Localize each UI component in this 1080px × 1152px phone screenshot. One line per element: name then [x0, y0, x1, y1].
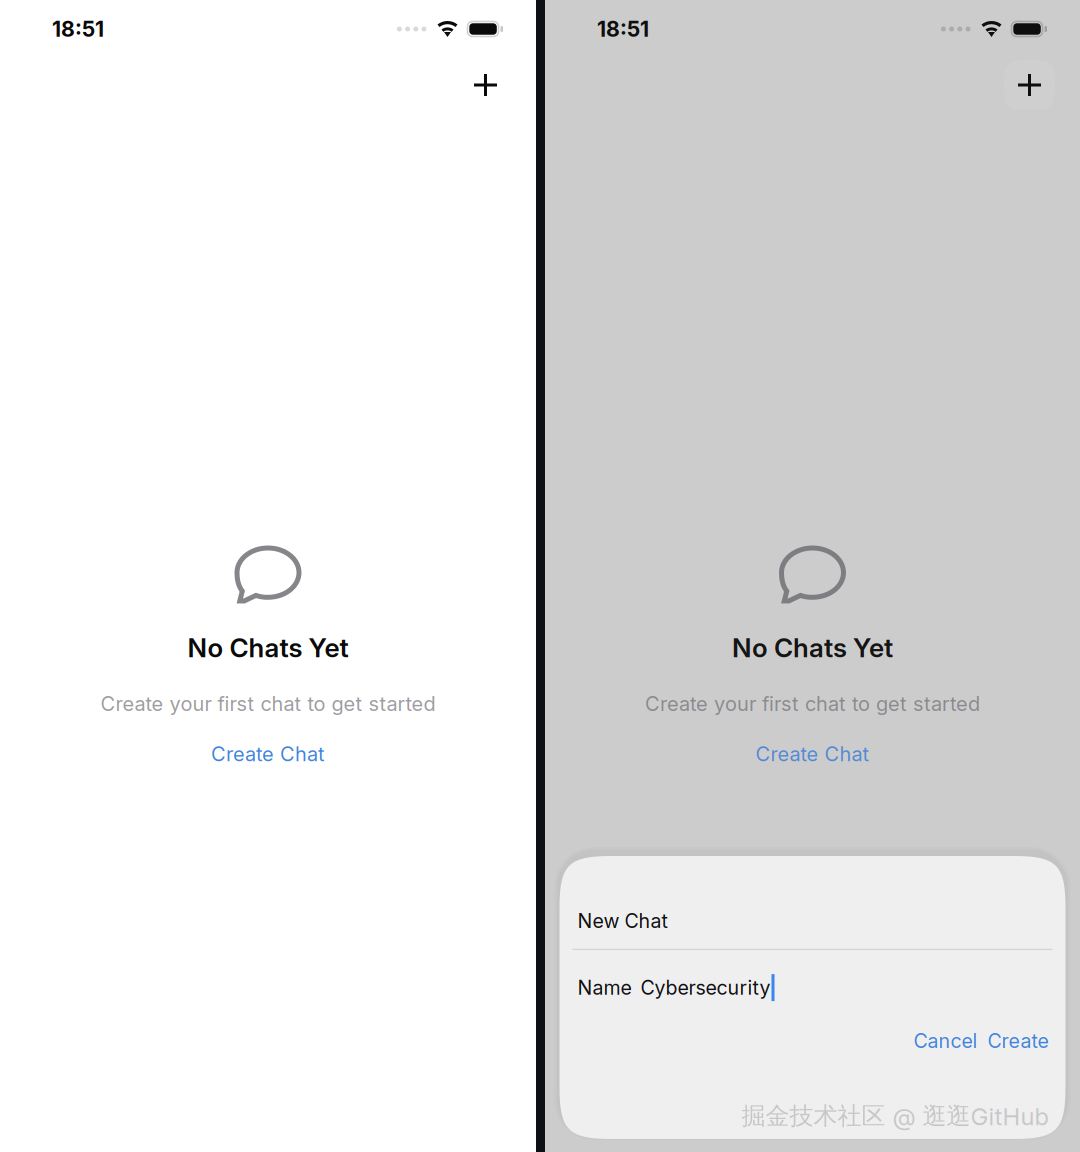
- staticText: Name: [577, 976, 631, 999]
- button[interactable]: Create Chat: [745, 734, 879, 774]
- staticText: 18:51: [52, 16, 104, 42]
- staticText: 18:51: [597, 16, 649, 42]
- button[interactable]: Create Chat: [201, 734, 335, 774]
- staticText: 掘金技术社区 @ 逛逛GitHub: [741, 1101, 1048, 1131]
- button[interactable]: New Chat: [1004, 60, 1055, 110]
- staticText: Create Chat: [211, 742, 325, 766]
- button[interactable]: Cancel: [909, 1023, 981, 1059]
- staticText: New Chat: [577, 909, 667, 933]
- staticText: Create: [987, 1029, 1048, 1053]
- button[interactable]: Create: [983, 1023, 1052, 1059]
- staticText: Create your first chat to get started: [100, 692, 435, 716]
- staticText: No Chats Yet: [187, 632, 348, 664]
- button[interactable]: New Chat: [460, 60, 511, 110]
- staticText: Create your first chat to get started: [645, 692, 980, 716]
- staticText: Create Chat: [755, 742, 869, 766]
- staticText: Cancel: [913, 1029, 977, 1053]
- staticText: No Chats Yet: [732, 632, 893, 664]
- staticText: Cybersecurity: [640, 976, 770, 999]
